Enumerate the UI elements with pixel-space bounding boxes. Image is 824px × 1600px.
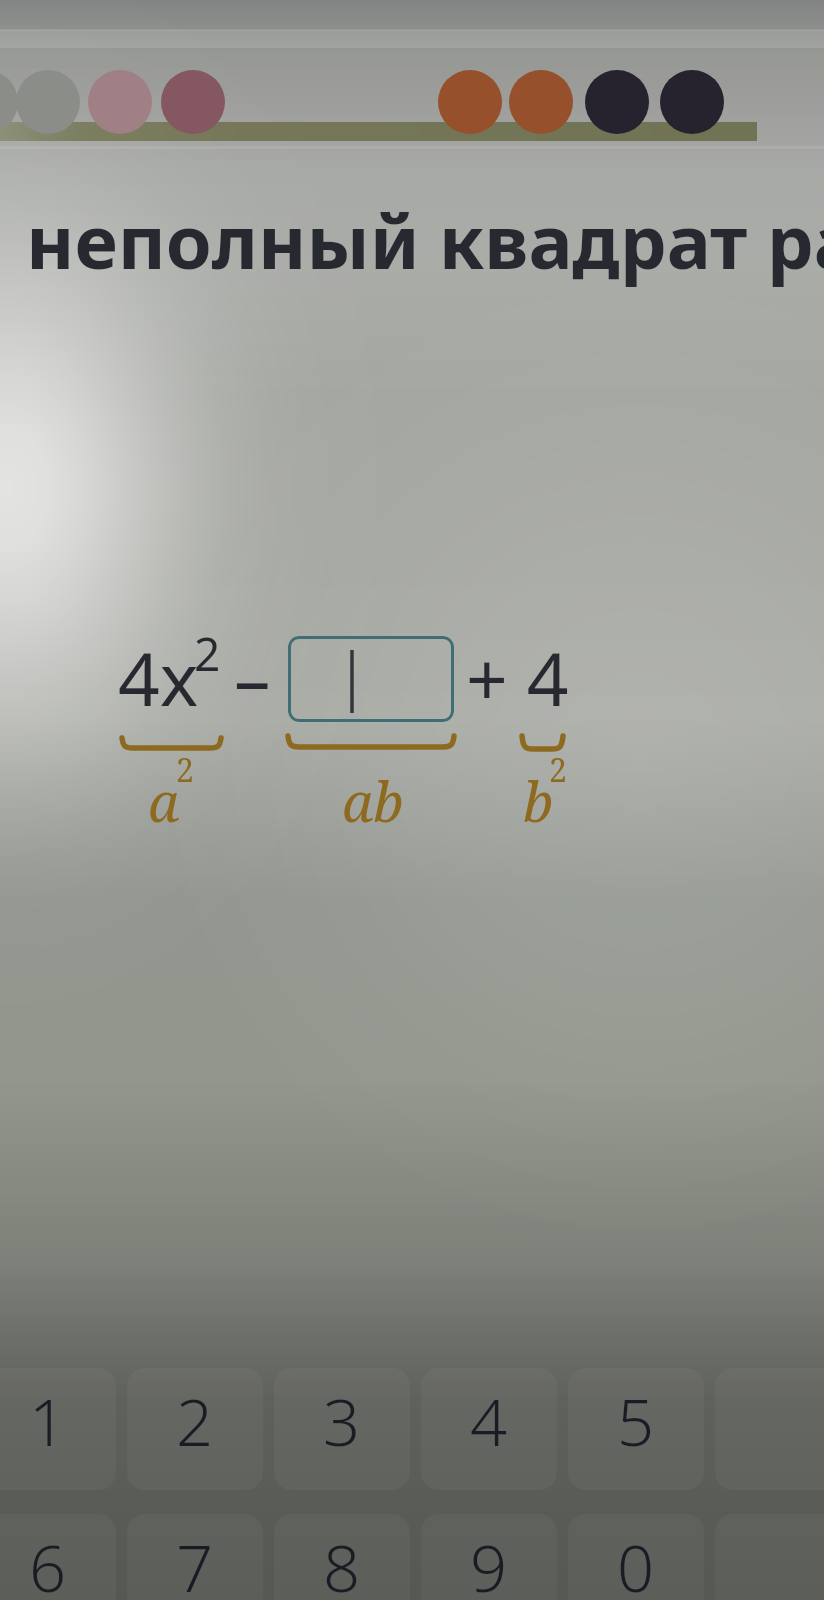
staticText: 7 (176, 1523, 214, 1600)
staticText: 1 (29, 1377, 67, 1466)
staticText: 0 (617, 1523, 655, 1600)
staticText: 8 (323, 1523, 361, 1600)
staticText: – (234, 628, 271, 727)
button[interactable]: 7 (127, 1514, 263, 1600)
staticText: неполный квадрат ра (26, 190, 824, 291)
staticText: 2 (194, 622, 221, 685)
button[interactable]: 0 (568, 1514, 704, 1600)
button[interactable]: 3 (274, 1368, 410, 1490)
button[interactable]: 4 (421, 1368, 557, 1490)
staticText: 2 (549, 748, 567, 792)
staticText: 4 (470, 1377, 508, 1466)
button[interactable]: 5 (568, 1368, 704, 1490)
button[interactable]: 8 (274, 1514, 410, 1600)
staticText: 3 (323, 1377, 361, 1466)
staticText: + 4 (466, 628, 569, 727)
button[interactable]: 6 (0, 1514, 116, 1600)
staticText: a (148, 764, 180, 838)
staticText: 6 (29, 1523, 67, 1600)
staticText: 9 (470, 1523, 508, 1600)
staticText: b (523, 764, 554, 838)
button[interactable]: 2 (127, 1368, 263, 1490)
staticText: ab (342, 764, 404, 838)
staticText: 2 (176, 748, 194, 792)
button[interactable]: Answer input field (288, 636, 454, 722)
button[interactable]: 9 (421, 1514, 557, 1600)
button[interactable]: 1 (0, 1368, 116, 1490)
staticText: 2 (176, 1377, 214, 1466)
staticText: 5 (617, 1377, 655, 1466)
staticText: 4x (118, 628, 199, 727)
